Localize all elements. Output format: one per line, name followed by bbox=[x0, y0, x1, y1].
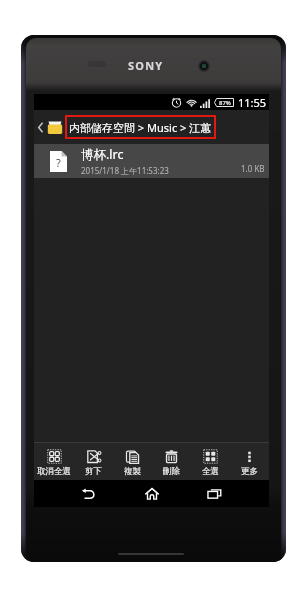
staticText: 2015/1/18 上午11:53:23 bbox=[81, 165, 169, 176]
button[interactable]: Up bbox=[34, 110, 269, 144]
other: Up bbox=[38, 122, 43, 133]
staticText: 全選 bbox=[202, 466, 219, 477]
button[interactable]: 刪除 bbox=[152, 443, 191, 480]
button[interactable]: Home bbox=[130, 480, 174, 507]
staticText: 剪下 bbox=[85, 466, 102, 477]
staticText: 博杯.lrc bbox=[81, 146, 124, 163]
staticText: SONY bbox=[128, 58, 164, 73]
button[interactable]: 更多 bbox=[230, 443, 269, 480]
staticText: 更多 bbox=[241, 466, 258, 477]
button[interactable]: ? bbox=[34, 144, 269, 178]
staticText: 刪除 bbox=[163, 466, 180, 477]
button[interactable]: 複製 bbox=[113, 443, 152, 480]
staticText: 内部儲存空間 > Music > 江蕙 bbox=[69, 120, 212, 135]
button[interactable]: 剪下 bbox=[74, 443, 113, 480]
button[interactable]: Back bbox=[66, 480, 110, 507]
staticText: 87% bbox=[219, 99, 231, 107]
staticText: 11:55 bbox=[238, 95, 267, 110]
button[interactable]: 全選 bbox=[191, 443, 230, 480]
staticText: 取消全選 bbox=[37, 466, 71, 477]
staticText: 1.0 KB bbox=[241, 163, 265, 174]
staticText: 複製 bbox=[124, 466, 141, 477]
button[interactable]: 取消全選 bbox=[34, 443, 74, 480]
button[interactable]: Recents bbox=[193, 480, 237, 507]
staticText: ? bbox=[56, 155, 61, 170]
